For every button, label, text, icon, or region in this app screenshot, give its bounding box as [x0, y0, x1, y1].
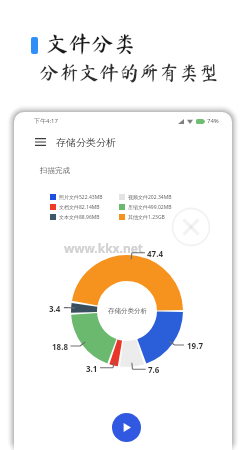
staticText: 视频文件202.34MB: [128, 194, 172, 201]
staticText: 其他文件1.23GB: [128, 214, 165, 221]
staticText: 47.4: [147, 248, 163, 259]
staticText: 18.8: [52, 341, 68, 352]
staticText: 19.7: [187, 340, 203, 351]
staticText: 压缩文件499.02MB: [128, 204, 172, 211]
staticText: 照片文件522.43MB: [59, 194, 103, 201]
staticText: 存储分类分析: [56, 136, 116, 149]
staticText: 文档文件82.14MB: [59, 204, 100, 211]
staticText: www.kkx.net: [64, 240, 144, 256]
staticText: 分析文件的所有类型: [39, 62, 219, 82]
staticText: 3.1: [86, 363, 98, 374]
button[interactable]: Start scan: [112, 413, 141, 442]
staticText: 文本文件88.96MB: [59, 214, 100, 221]
button[interactable]: Menu: [31, 133, 49, 151]
staticText: 下午4:17: [34, 117, 58, 125]
staticText: 扫描完成: [40, 166, 70, 175]
staticText: 文件分类: [46, 32, 137, 54]
staticText: 存储分类分析: [108, 307, 147, 315]
staticText: 3.4: [49, 303, 61, 314]
staticText: 74%: [207, 117, 219, 125]
staticText: 7.6: [148, 364, 160, 375]
